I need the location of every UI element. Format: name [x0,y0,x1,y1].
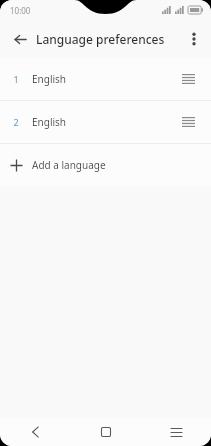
button[interactable]: 1 [0,58,211,100]
button[interactable]: Back [0,418,71,446]
staticText: English [32,72,67,86]
button[interactable]: More options [180,25,208,53]
button[interactable]: Reorder English [175,66,201,92]
button[interactable]: Home [71,418,141,446]
staticText: 1 [13,73,19,85]
button[interactable]: Recent apps [141,418,211,446]
staticText: Language preferences [36,31,165,47]
button[interactable]: 2 [0,101,211,143]
button[interactable]: Add a language [0,144,211,186]
staticText: Add a language [32,158,106,172]
button[interactable]: Reorder English [175,109,201,135]
staticText: 10:00 [10,5,31,16]
button[interactable]: Back [6,25,34,53]
staticText: 2 [13,116,19,128]
staticText: English [32,115,67,129]
